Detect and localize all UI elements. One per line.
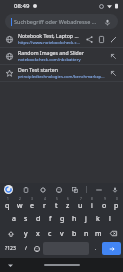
staticText: n [84,229,89,239]
staticText: y [24,229,28,239]
button[interactable]: g [57,212,67,225]
staticText: o [102,201,107,210]
staticText: v [60,229,64,239]
button[interactable]: 0 [111,197,121,210]
staticText: 6 [67,197,69,201]
staticText: g [60,214,65,224]
button[interactable]: k [93,212,103,225]
staticText: principledtechnologies.com/benchmarkxprt… [18,74,105,80]
staticText: z [66,201,70,210]
staticText: 3 [31,197,33,201]
button[interactable]: s [21,212,31,225]
staticText: 2 [19,197,21,201]
staticText: p [114,201,119,210]
staticText: 0 [116,197,118,201]
button[interactable]: 9 [99,197,109,210]
button[interactable]: x [33,227,43,240]
staticText: 9 [104,197,106,201]
staticText: c [48,229,52,239]
staticText: k [96,214,100,224]
button[interactable]: Share [84,34,94,44]
button[interactable]: 4 [39,197,49,210]
staticText: 8 [91,197,93,201]
staticText: t [55,201,58,210]
button[interactable]: Open on device [96,34,106,44]
button[interactable]: 3 [27,197,37,210]
button[interactable]: 7 [75,197,85,210]
staticText: 7 [80,197,82,201]
staticText: x [36,229,40,239]
button[interactable]: Voice search [102,17,112,27]
button[interactable]: 8 [87,197,97,210]
staticText: e [30,201,34,210]
button[interactable]: 5 [51,197,61,210]
staticText: Random Images and Slider [18,49,84,56]
staticText: a [12,214,16,224]
staticText: 4 [44,197,46,201]
button[interactable]: Emoji [54,185,63,194]
button[interactable]: 6 [63,197,73,210]
staticText: ?123 [5,245,16,252]
button[interactable]: 2 [15,197,25,210]
staticText: Suchbegriff oder Webadresse eingeben [14,18,99,25]
staticText: d [36,214,41,224]
button[interactable]: Emoji [32,242,41,255]
staticText: Den Test starten [18,66,58,73]
staticText: s [24,214,28,224]
button[interactable]: Edit [108,34,118,44]
staticText: https://www.notebookcheck.com/ [18,40,81,46]
button[interactable]: Shift [2,227,19,240]
button[interactable]: Clipboard [21,185,30,194]
button[interactable]: y [21,227,31,240]
button[interactable]: Translate [70,185,79,194]
staticText: m [95,229,102,239]
button[interactable]: c [45,227,55,240]
button[interactable]: Google [4,185,13,194]
button[interactable]: / [21,242,30,255]
button[interactable]: More [94,185,103,194]
button[interactable]: Random Images and Slider [0,48,123,64]
button[interactable]: Suchbegriff oder Webadresse eingeben [5,14,118,29]
button[interactable]: Den Test starten [0,65,123,81]
staticText: notebookcheck.com/nbcbattery [18,57,81,63]
staticText: r [43,201,46,210]
staticText: i [91,201,93,210]
button[interactable]: v [57,227,67,240]
staticText: 08:49 [14,2,30,10]
staticText: l [109,214,111,224]
button[interactable]: f [45,212,55,225]
button[interactable]: Voice input [110,185,119,194]
staticText: u [78,201,83,210]
staticText: h [72,214,77,224]
button[interactable]: n [81,227,91,240]
button[interactable]: Settings [38,185,47,194]
button[interactable]: d [33,212,43,225]
button[interactable]: Hide keyboard [6,261,15,270]
button[interactable]: Notebook Test, Laptop Test u… [0,31,123,47]
staticText: j [85,214,87,224]
staticText: 5 [56,197,58,201]
button[interactable]: . [91,242,100,255]
staticText: w [17,201,23,210]
button[interactable]: 1 [2,197,13,210]
staticText: Notebook Test, Laptop Test u… [18,32,81,39]
button[interactable]: j [81,212,91,225]
staticText: f [49,214,52,224]
staticText: 1 [7,197,9,201]
button[interactable]: h [69,212,79,225]
button[interactable]: Enter [102,242,121,255]
button[interactable]: b [69,227,79,240]
staticText: / [25,245,27,252]
button[interactable]: a [9,212,19,225]
button[interactable]: Insert suggestion [108,51,118,61]
staticText: b [72,229,77,239]
staticText: q [5,201,10,210]
button[interactable]: l [105,212,115,225]
button[interactable]: Backspace [105,227,121,240]
staticText: . [95,245,97,252]
button[interactable]: ?123 [2,242,19,255]
button[interactable]: Insert suggestion [108,68,118,78]
button[interactable]: m [93,227,103,240]
